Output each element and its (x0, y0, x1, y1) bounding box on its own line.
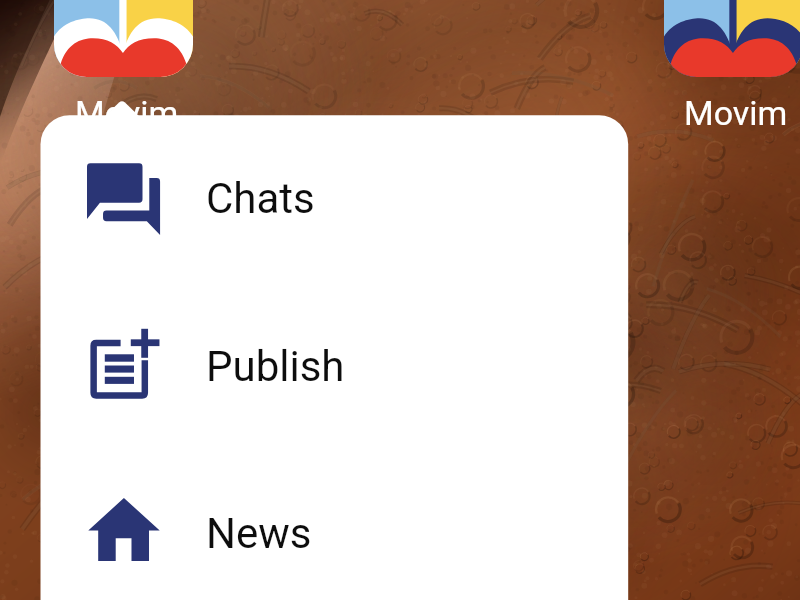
button[interactable]: Chats (41, 116, 628, 281)
button[interactable]: News (41, 450, 628, 600)
staticText: Movim (684, 93, 788, 133)
staticText: News (206, 509, 312, 558)
staticText: Chats (206, 174, 315, 223)
staticText: Movim (75, 93, 179, 133)
staticText: Publish (206, 342, 345, 391)
button[interactable]: Publish (41, 284, 628, 449)
